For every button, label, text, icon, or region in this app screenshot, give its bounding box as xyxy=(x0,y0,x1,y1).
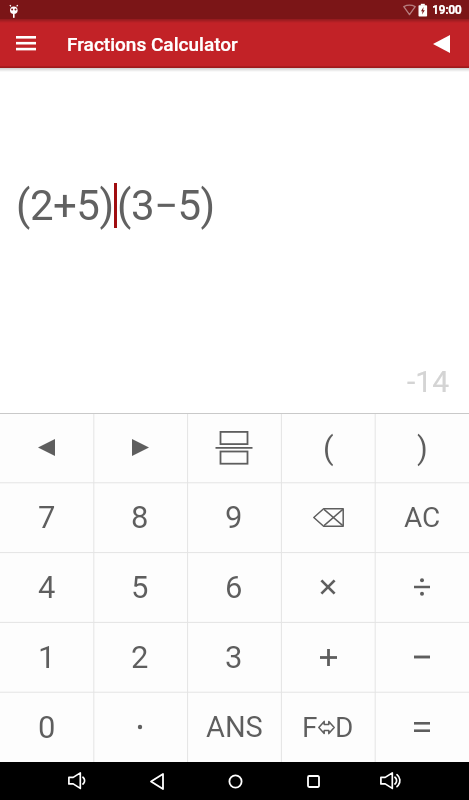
button[interactable] xyxy=(196,762,274,800)
staticText: 1 xyxy=(38,639,56,675)
button[interactable]: 6 xyxy=(187,552,281,622)
button[interactable] xyxy=(375,622,469,692)
button[interactable]: 7 xyxy=(0,482,93,552)
button[interactable]: 3 xyxy=(187,622,281,692)
button[interactable]: ( xyxy=(281,413,375,482)
button[interactable]: 2 xyxy=(93,622,187,692)
button[interactable] xyxy=(375,692,469,762)
button[interactable] xyxy=(274,762,352,800)
button[interactable] xyxy=(187,413,281,482)
button[interactable]: 1 xyxy=(0,622,93,692)
button[interactable] xyxy=(375,552,469,622)
button[interactable]: 9 xyxy=(187,482,281,552)
button[interactable]: 4 xyxy=(0,552,93,622)
button[interactable]: F xyxy=(281,692,375,762)
button[interactable]: AC xyxy=(375,482,469,552)
staticText: AC xyxy=(404,501,441,534)
button[interactable] xyxy=(40,762,118,800)
button[interactable]: 8 xyxy=(93,482,187,552)
staticText: (2+5) xyxy=(16,181,114,230)
button[interactable] xyxy=(118,762,196,800)
button[interactable]: ANS xyxy=(187,692,281,762)
staticText: F xyxy=(302,711,318,744)
staticText: 2 xyxy=(131,639,149,675)
button[interactable]: ) xyxy=(375,413,469,482)
staticText: 9 xyxy=(225,499,243,535)
staticText: 0 xyxy=(38,709,56,745)
staticText: 6 xyxy=(225,569,243,605)
staticText: ANS xyxy=(206,710,263,744)
staticText: D xyxy=(335,711,354,744)
button[interactable] xyxy=(281,622,375,692)
staticText: 5 xyxy=(131,569,149,605)
button[interactable]: 0 xyxy=(0,692,93,762)
staticText: 19:00 xyxy=(432,3,462,17)
button[interactable] xyxy=(281,552,375,622)
staticText: Fractions Calculator xyxy=(67,33,238,55)
staticText: -14 xyxy=(407,364,450,399)
staticText: (3−5) xyxy=(117,181,215,230)
button[interactable] xyxy=(413,19,469,68)
button[interactable] xyxy=(281,482,375,552)
button[interactable] xyxy=(93,413,187,482)
staticText: 4 xyxy=(38,569,56,605)
button[interactable] xyxy=(0,413,93,482)
staticText: ( xyxy=(323,430,334,466)
staticText: ) xyxy=(417,430,428,466)
staticText: 3 xyxy=(225,639,243,675)
button[interactable] xyxy=(0,19,52,68)
staticText: 7 xyxy=(38,499,56,535)
button[interactable] xyxy=(352,762,430,800)
button[interactable] xyxy=(93,692,187,762)
button[interactable]: 5 xyxy=(93,552,187,622)
staticText: 8 xyxy=(131,499,149,535)
